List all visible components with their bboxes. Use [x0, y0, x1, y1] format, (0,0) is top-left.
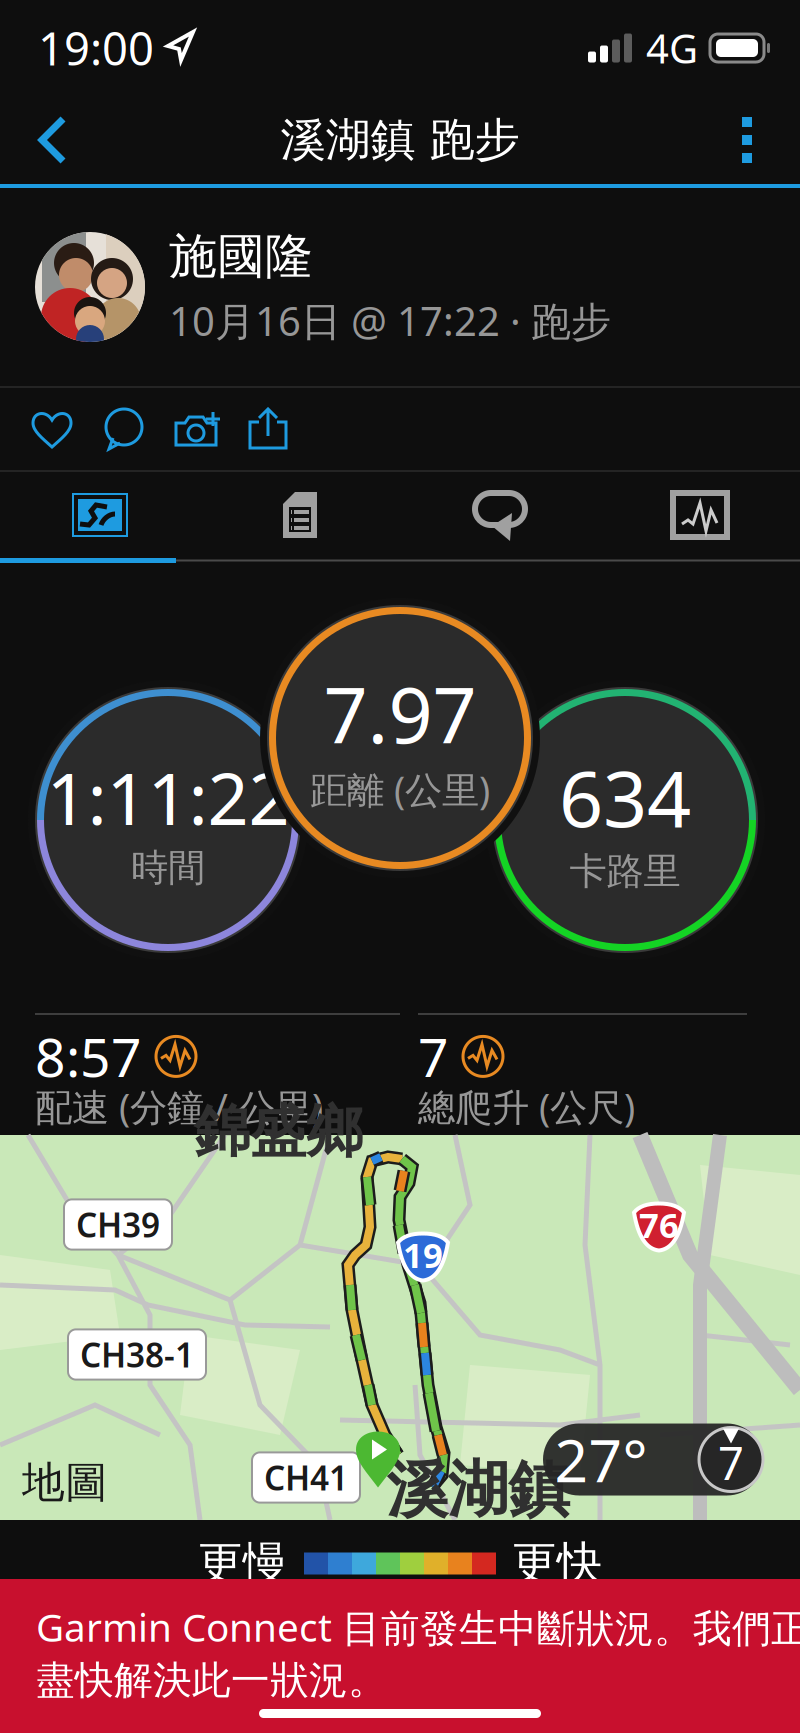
staticText: 施國隆: [169, 227, 313, 286]
staticText: CH39: [76, 1202, 160, 1247]
staticText: 7: [418, 1021, 449, 1092]
staticText: 7.97: [323, 662, 476, 765]
button[interactable]: Add photo: [160, 388, 232, 470]
staticText: 距離 (公里): [310, 765, 490, 814]
staticText: 盡快解決此一狀況。: [36, 1656, 387, 1704]
staticText: 634: [559, 746, 691, 848]
staticText: 總爬升 (公尺): [418, 1082, 635, 1131]
button[interactable]: More options: [714, 95, 780, 185]
button[interactable]: Charts: [600, 472, 800, 558]
staticText: 1:11:22: [46, 749, 289, 845]
button[interactable]: Like: [16, 388, 88, 470]
button[interactable]: Share: [232, 388, 304, 470]
staticText: 19: [403, 1231, 443, 1277]
staticText: 19:00: [38, 18, 154, 78]
staticText: 錦盛鄉: [194, 1097, 362, 1166]
staticText: 7: [718, 1432, 744, 1493]
button[interactable]: Back: [20, 95, 86, 185]
button[interactable]: Laps: [400, 472, 600, 558]
staticText: 更慢: [198, 1536, 288, 1591]
staticText: 76: [639, 1201, 679, 1247]
staticText: CH41: [264, 1455, 348, 1500]
button[interactable]: Details: [200, 472, 400, 558]
staticText: 配速 (分鐘 / 公里): [35, 1082, 323, 1131]
staticText: 8:57: [35, 1021, 142, 1092]
staticText: 時間: [131, 845, 205, 891]
button[interactable]: Map: [0, 472, 200, 558]
staticText: 卡路里: [569, 848, 680, 894]
staticText: 地圖: [22, 1456, 108, 1509]
button[interactable]: 施國隆: [0, 188, 800, 386]
staticText: Garmin Connect 目前發生中斷狀況。我們正: [36, 1601, 800, 1652]
staticText: 10月16日 @ 17:22 · 跑步: [169, 294, 611, 347]
button[interactable]: Comment: [88, 388, 160, 470]
staticText: CH38-1: [80, 1332, 194, 1377]
staticText: 溪湖鎮 跑步: [280, 112, 519, 168]
staticText: 更快: [512, 1536, 602, 1591]
staticText: 溪湖鎮: [386, 1452, 569, 1527]
staticText: 4G: [646, 21, 698, 74]
staticText: 27°: [554, 1420, 647, 1498]
